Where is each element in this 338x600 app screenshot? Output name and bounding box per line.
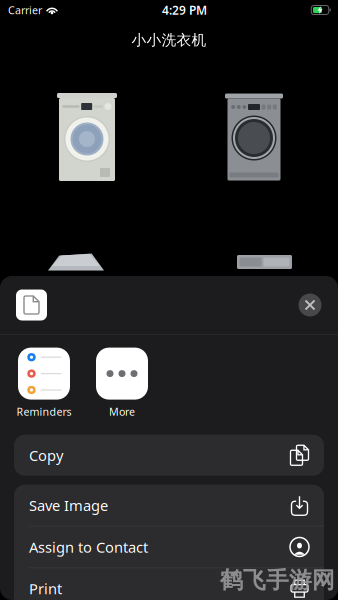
button[interactable]: Save Image bbox=[14, 485, 324, 526]
staticText: Save Image bbox=[29, 495, 108, 515]
staticText: More bbox=[109, 405, 135, 419]
staticText: Copy bbox=[29, 445, 63, 465]
staticText: Print bbox=[29, 579, 62, 598]
button[interactable]: More bbox=[83, 348, 161, 419]
staticText: 4:29 PM bbox=[162, 2, 207, 18]
staticText: Reminders bbox=[16, 405, 71, 419]
staticText: Carrier bbox=[8, 3, 42, 17]
button[interactable]: Close bbox=[296, 291, 324, 319]
button[interactable]: Copy bbox=[14, 435, 324, 476]
staticText: Assign to Contact bbox=[29, 537, 148, 557]
staticText: 鹤飞手游网 bbox=[220, 566, 335, 594]
button[interactable]: Assign to Contact bbox=[14, 526, 324, 567]
button[interactable]: Reminders bbox=[5, 348, 83, 419]
staticText: 小小洗衣机 bbox=[131, 31, 206, 49]
button[interactable]: Print bbox=[14, 568, 324, 600]
